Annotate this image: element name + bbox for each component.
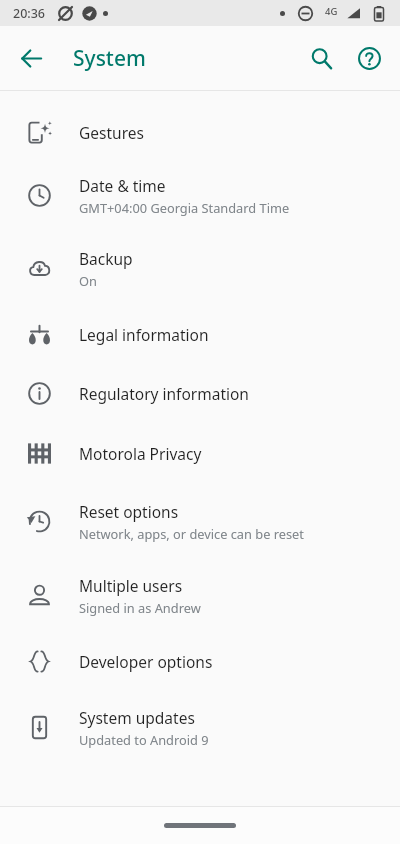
staticText: Backup xyxy=(79,248,133,269)
button[interactable]: Legal information xyxy=(0,305,400,363)
staticText: 20:36 xyxy=(13,5,46,22)
staticText: System updates xyxy=(79,707,195,728)
staticText: Multiple users xyxy=(79,575,183,596)
button[interactable]: Search xyxy=(298,35,344,81)
button[interactable]: System updates xyxy=(0,691,400,763)
button[interactable]: Developer options xyxy=(0,631,400,691)
button[interactable]: Motorola Privacy xyxy=(0,423,400,483)
button[interactable]: Reset options xyxy=(0,483,400,559)
staticText: 4G xyxy=(325,5,338,18)
staticText: Legal information xyxy=(79,324,209,345)
staticText: GMT+04:00 Georgia Standard Time xyxy=(79,199,290,216)
staticText: Signed in as Andrew xyxy=(79,599,201,616)
staticText: Network, apps, or device can be reset xyxy=(79,525,304,542)
staticText: System xyxy=(73,44,146,73)
button[interactable]: Multiple users xyxy=(0,559,400,631)
button[interactable]: Help xyxy=(346,35,392,81)
staticText: Reset options xyxy=(79,501,179,522)
staticText: Developer options xyxy=(79,651,213,672)
staticText: Date & time xyxy=(79,175,166,196)
button[interactable]: Date & time xyxy=(0,159,400,231)
staticText: Regulatory information xyxy=(79,383,249,404)
button[interactable]: Regulatory information xyxy=(0,363,400,423)
button[interactable]: Back xyxy=(8,35,54,81)
button[interactable]: Gestures xyxy=(0,105,400,159)
staticText: Gestures xyxy=(79,122,144,143)
button[interactable]: Backup xyxy=(0,231,400,305)
staticText: On xyxy=(79,272,97,289)
staticText: Updated to Android 9 xyxy=(79,731,209,748)
staticText: Motorola Privacy xyxy=(79,443,202,464)
